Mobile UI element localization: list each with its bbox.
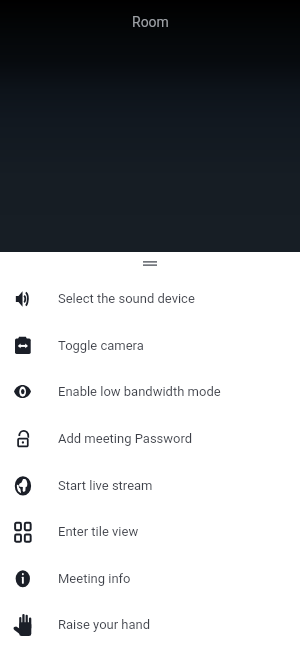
button[interactable]: Select the sound device: [0, 275, 300, 322]
staticText: Add meeting Password: [58, 431, 193, 446]
button[interactable]: Meeting info: [0, 555, 300, 602]
staticText: Start live stream: [58, 478, 153, 493]
staticText: Meeting info: [58, 571, 131, 586]
button[interactable]: Raise your hand: [0, 601, 300, 648]
staticText: Toggle camera: [58, 338, 144, 353]
staticText: Raise your hand: [58, 617, 151, 632]
staticText: Select the sound device: [58, 291, 195, 306]
button[interactable]: Toggle camera: [0, 322, 300, 369]
button[interactable]: Start live stream: [0, 462, 300, 509]
button[interactable]: Enter tile view: [0, 508, 300, 555]
staticText: Room: [132, 14, 169, 30]
staticText: Enable low bandwidth mode: [58, 384, 221, 399]
staticText: Enter tile view: [58, 524, 139, 539]
button[interactable]: Add meeting Password: [0, 415, 300, 462]
button[interactable]: Enable low bandwidth mode: [0, 368, 300, 415]
